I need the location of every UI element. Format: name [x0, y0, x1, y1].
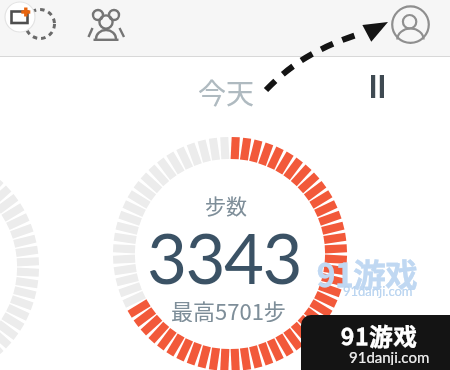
button[interactable] — [363, 70, 393, 104]
staticText: 91danji.com — [343, 283, 413, 299]
staticText: 91danji.com — [349, 348, 430, 365]
staticText: 91游戏 — [317, 250, 418, 290]
staticText: 今天 — [198, 72, 255, 110]
staticText: 91游戏 — [341, 318, 419, 351]
button[interactable] — [392, 4, 432, 46]
staticText: 3343 — [147, 216, 302, 290]
staticText: 步数 — [205, 190, 247, 220]
staticText: 最高5701步 — [171, 294, 286, 322]
button[interactable] — [80, 2, 130, 44]
button[interactable] — [4, 1, 60, 47]
